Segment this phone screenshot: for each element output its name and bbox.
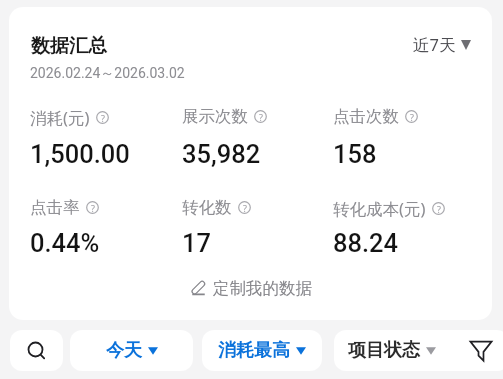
staticText: 158 [333, 139, 377, 169]
staticText: 0.44% [30, 228, 100, 258]
staticText: 2026.02.24～2026.03.02 [30, 65, 185, 83]
staticText: 消耗(元) [30, 106, 90, 129]
staticText: 定制我的数据 [213, 278, 312, 299]
button[interactable]: 近7天 [413, 33, 471, 56]
button[interactable]: 项目状态 [334, 330, 503, 371]
staticText: 17 [182, 228, 211, 258]
button[interactable]: Filter [466, 336, 495, 365]
staticText: 35,982 [182, 139, 261, 169]
staticText: 88.24 [333, 228, 399, 258]
staticText: 展示次数 [182, 106, 248, 127]
staticText: ? [259, 111, 263, 123]
button[interactable]: Search [10, 330, 63, 371]
staticText: ? [101, 112, 105, 124]
staticText: ? [243, 202, 247, 214]
staticText: ? [410, 111, 414, 123]
staticText: 转化数 [182, 197, 232, 218]
staticText: 转化成本(元) [333, 197, 426, 220]
staticText: 点击次数 [333, 106, 399, 127]
staticText: 点击率 [30, 197, 80, 218]
staticText: ? [437, 203, 441, 215]
button[interactable]: 消耗最高 [202, 330, 322, 371]
staticText: 消耗最高 [218, 339, 290, 362]
staticText: 项目状态 [348, 339, 420, 362]
staticText: 今天 [106, 339, 142, 362]
staticText: ? [91, 202, 95, 214]
staticText: 近7天 [413, 33, 456, 56]
staticText: 数据汇总 [31, 34, 107, 58]
staticText: 1,500.00 [30, 139, 130, 169]
button[interactable]: 今天 [70, 330, 193, 371]
button[interactable]: 定制我的数据 [192, 278, 312, 299]
